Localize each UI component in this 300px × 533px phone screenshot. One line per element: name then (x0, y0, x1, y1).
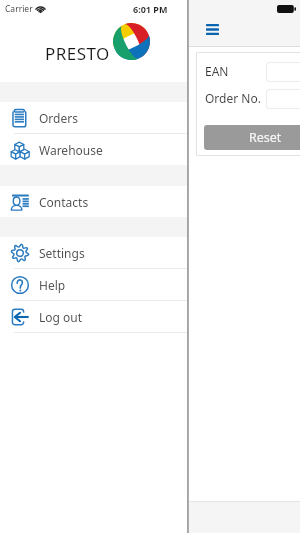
staticText: Orders (39, 110, 78, 126)
staticText: Help (39, 277, 66, 293)
button[interactable]: Log out (0, 301, 187, 332)
staticText: Warehouse (39, 142, 103, 158)
button[interactable]: Orders (0, 102, 187, 133)
button[interactable]: Warehouse (0, 134, 187, 165)
staticText: EAN (205, 63, 229, 79)
button[interactable] (266, 89, 300, 109)
staticText: Order No. (205, 90, 261, 106)
staticText: PRESTO (45, 42, 110, 65)
staticText: Carrier (5, 3, 33, 15)
staticText: 6:01 PM (133, 3, 168, 15)
staticText: Log out (39, 309, 83, 325)
button[interactable]: Open navigation menu (203, 21, 222, 38)
staticText: Reset (249, 129, 282, 146)
staticText: Contacts (39, 194, 89, 210)
button[interactable]: Contacts (0, 186, 187, 217)
button[interactable]: Help (0, 269, 187, 300)
staticText: Settings (39, 245, 85, 261)
button[interactable]: Settings (0, 237, 187, 268)
button[interactable] (266, 62, 300, 82)
button[interactable]: Reset (204, 125, 300, 150)
